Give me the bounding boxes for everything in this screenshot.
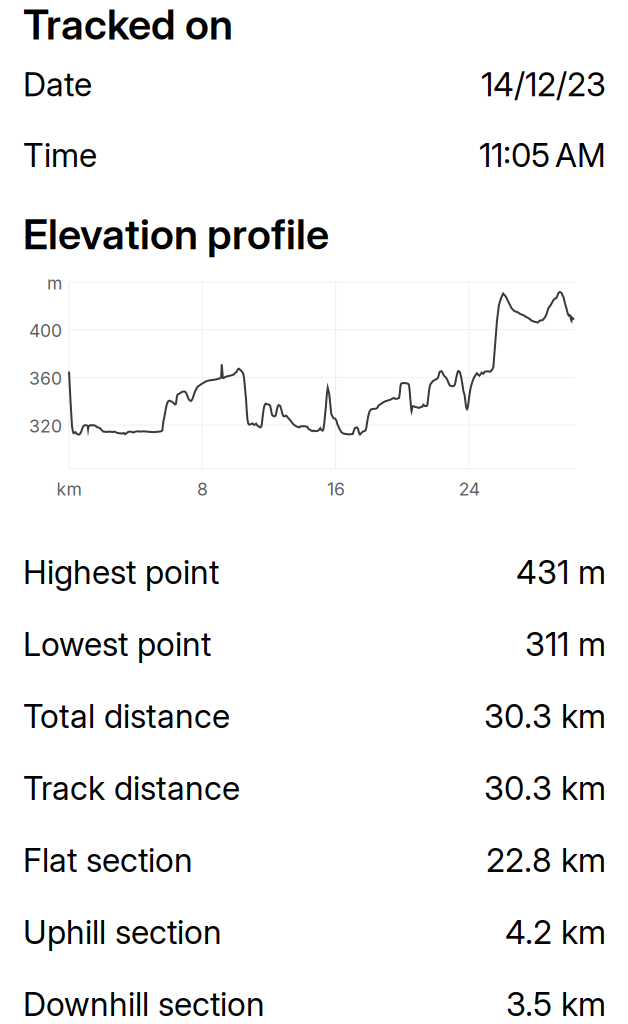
staticText: m (47, 272, 62, 294)
button[interactable]: Track distance (0, 752, 628, 824)
staticText: 24 (459, 478, 480, 500)
staticText: Elevation profile (23, 209, 329, 259)
button[interactable]: Uphill section (0, 896, 628, 968)
staticText: Downhill section (23, 984, 265, 1024)
staticText: Tracked on (23, 0, 233, 49)
staticText: Total distance (23, 696, 230, 736)
staticText: Uphill section (23, 912, 222, 952)
staticText: Lowest point (23, 624, 211, 664)
button[interactable]: Date (0, 48, 628, 120)
staticText: 30.3 km (484, 696, 606, 736)
staticText: 30.3 km (484, 768, 606, 808)
staticText: 431 m (516, 552, 606, 592)
staticText: 320 (29, 415, 62, 437)
staticText: km (56, 478, 81, 500)
staticText: Highest point (23, 552, 219, 592)
staticText: 11:05 AM (479, 135, 606, 175)
staticText: 400 (29, 320, 62, 341)
staticText: 3.5 km (506, 984, 606, 1024)
staticText: Time (23, 135, 97, 175)
button[interactable]: Downhill section (0, 968, 628, 1024)
staticText: Date (23, 64, 92, 104)
button[interactable]: Highest point (0, 536, 628, 608)
button[interactable]: Flat section (0, 824, 628, 896)
staticText: 360 (29, 368, 62, 389)
staticText: Track distance (23, 768, 240, 808)
button[interactable]: Lowest point (0, 608, 628, 680)
staticText: Flat section (23, 840, 193, 880)
staticText: 14/12/23 (481, 64, 606, 104)
staticText: 8 (197, 478, 208, 500)
staticText: 22.8 km (486, 840, 606, 880)
button[interactable]: Total distance (0, 680, 628, 752)
staticText: 4.2 km (505, 912, 606, 952)
button[interactable]: Time (0, 120, 628, 190)
staticText: 311 m (525, 624, 606, 664)
staticText: 16 (327, 478, 345, 500)
